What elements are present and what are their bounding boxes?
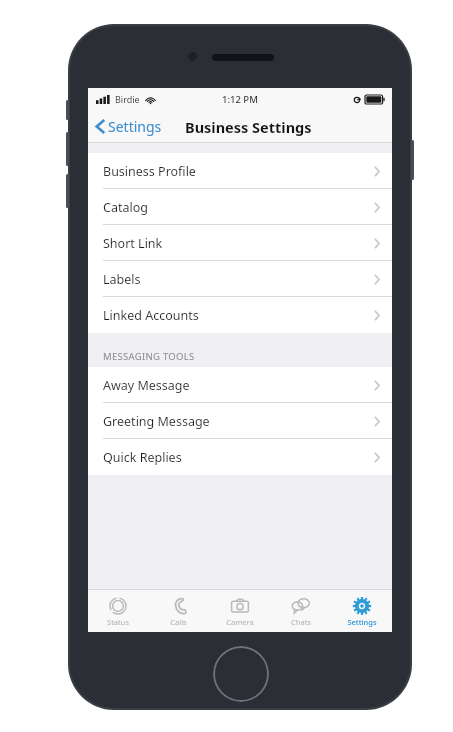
staticText: Calls [170, 617, 187, 627]
staticText: Labels [103, 271, 141, 288]
button[interactable]: Business Profile [88, 153, 392, 189]
staticText: Short Link [103, 235, 163, 252]
button[interactable]: Linked Accounts [88, 297, 392, 333]
button[interactable]: Calls [148, 590, 209, 632]
staticText: Business Settings [185, 117, 312, 137]
staticText: MESSAGING TOOLS [103, 350, 195, 363]
button[interactable]: Status [88, 590, 148, 632]
button[interactable]: Settings [331, 590, 392, 632]
button[interactable]: Settings [88, 110, 168, 143]
button[interactable]: Labels [88, 261, 392, 297]
button[interactable]: Camera [209, 590, 270, 632]
button[interactable]: Chats [270, 590, 331, 632]
staticText: Away Message [103, 377, 190, 394]
staticText: Settings [108, 117, 162, 136]
staticText: Chats [291, 617, 311, 627]
staticText: Greeting Message [103, 413, 210, 430]
staticText: 1:12 PM [222, 93, 258, 106]
staticText: Catalog [103, 199, 148, 216]
staticText: Camera [226, 617, 254, 627]
button[interactable]: Catalog [88, 189, 392, 225]
button[interactable]: Away Message [88, 367, 392, 403]
staticText: Status [107, 617, 129, 627]
staticText: Linked Accounts [103, 307, 199, 324]
button[interactable]: Greeting Message [88, 403, 392, 439]
button[interactable]: Short Link [88, 225, 392, 261]
staticText: Birdie [115, 93, 140, 105]
button[interactable]: Quick Replies [88, 439, 392, 475]
staticText: Quick Replies [103, 449, 182, 466]
staticText: Settings [347, 617, 377, 627]
staticText: Business Profile [103, 163, 196, 180]
